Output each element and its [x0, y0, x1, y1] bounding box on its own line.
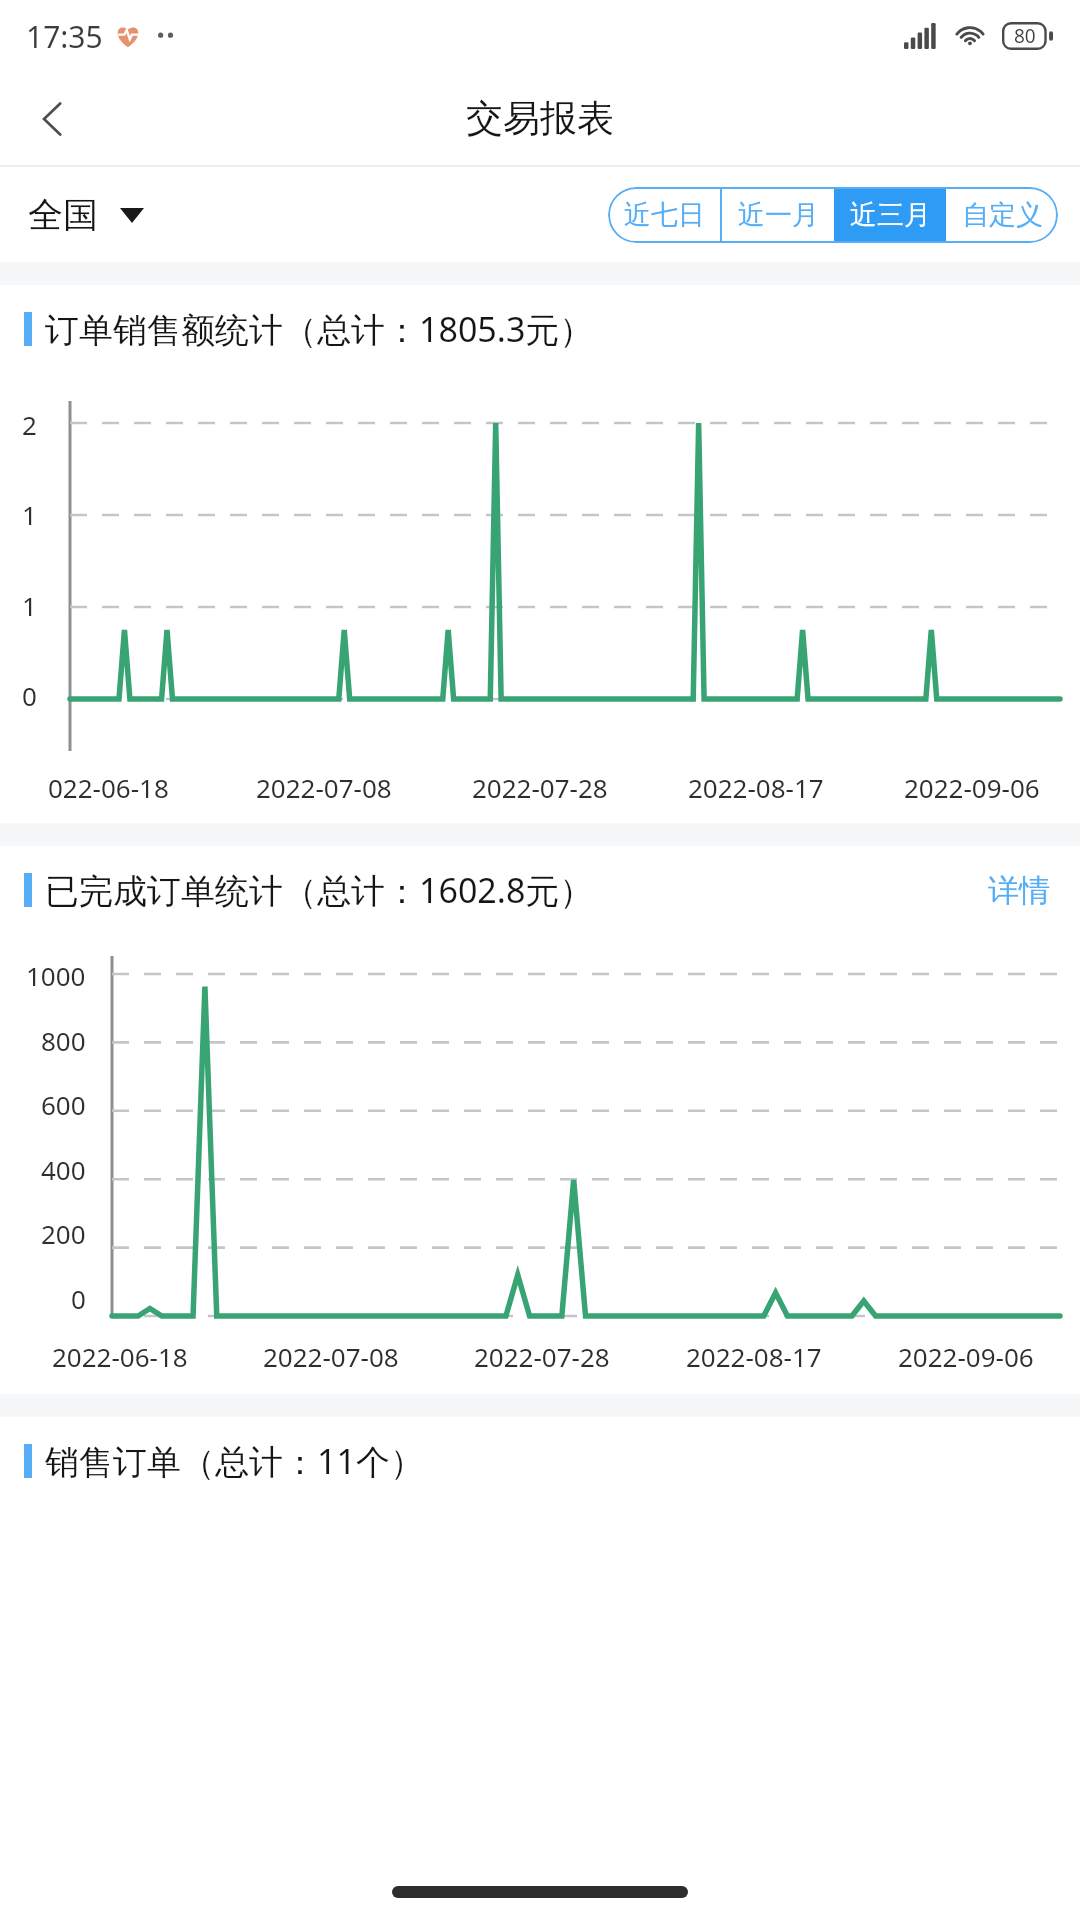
staticText: 1 [22, 497, 37, 532]
staticText: 已完成订单统计（总计：1602.8元） [45, 867, 594, 913]
staticText: 2022-07-28 [474, 1339, 610, 1374]
staticText: 近一月 [738, 198, 819, 232]
staticText: 800 [41, 1023, 86, 1058]
staticText: 销售订单（总计：11个） [45, 1438, 424, 1484]
staticText: 1000 [26, 958, 86, 993]
staticText: 近三月 [850, 198, 931, 232]
staticText: 0 [22, 678, 37, 713]
staticText: 2022-09-06 [904, 770, 1040, 805]
button[interactable]: Back [10, 76, 96, 162]
staticText: 2022-09-06 [898, 1339, 1034, 1374]
staticText: 0 [71, 1281, 86, 1316]
staticText: 600 [41, 1087, 86, 1122]
staticText: 2022-08-17 [686, 1339, 822, 1374]
staticText: 全国 [28, 193, 98, 237]
staticText: 200 [41, 1216, 86, 1251]
staticText: 400 [41, 1152, 86, 1187]
button[interactable]: 全国 [22, 185, 150, 245]
button[interactable]: 近三月 [834, 187, 946, 243]
staticText: 022-06-18 [48, 770, 169, 805]
staticText: 2022-06-18 [52, 1339, 188, 1374]
staticText: 2022-07-08 [263, 1339, 399, 1374]
staticText: 2022-07-28 [472, 770, 608, 805]
button[interactable]: 详情 [976, 859, 1062, 922]
staticText: 交易报表 [466, 95, 614, 142]
button[interactable]: 自定义 [946, 187, 1058, 243]
staticText: 2 [22, 407, 37, 442]
staticText: 详情 [988, 871, 1050, 910]
staticText: 近七日 [624, 198, 705, 232]
button[interactable]: 近一月 [722, 187, 834, 243]
button[interactable]: 近七日 [608, 187, 720, 243]
staticText: 2022-08-17 [688, 770, 824, 805]
staticText: 1 [22, 588, 37, 623]
staticText: 订单销售额统计（总计：1805.3元） [45, 306, 594, 352]
staticText: 80 [1014, 23, 1036, 49]
staticText: 2022-07-08 [256, 770, 392, 805]
staticText: 17:35 [26, 16, 103, 57]
staticText: 自定义 [962, 198, 1043, 232]
